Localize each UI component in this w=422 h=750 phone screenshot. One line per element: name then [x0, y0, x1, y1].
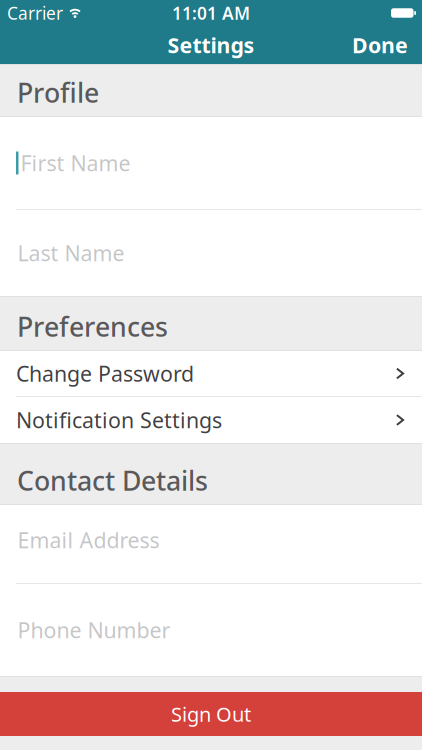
staticText: Preferences	[17, 309, 168, 344]
staticText: Last Name	[17, 239, 124, 267]
staticText: Notification Settings	[16, 406, 222, 434]
button[interactable]: First Name	[0, 117, 422, 209]
staticText: Change Password	[16, 359, 194, 388]
staticText: Settings	[167, 31, 254, 59]
button[interactable]: Last Name	[0, 210, 422, 296]
staticText: Profile	[17, 75, 99, 110]
staticText: 11:01 AM	[172, 1, 250, 24]
button[interactable]: Phone Number	[0, 584, 422, 676]
staticText: Sign Out	[171, 701, 251, 727]
staticText: Done	[352, 31, 408, 59]
button[interactable]: Sign Out	[0, 692, 422, 736]
staticText: First Name	[20, 149, 130, 177]
button[interactable]: Notification Settings	[0, 397, 422, 443]
button[interactable]: Email Address	[0, 505, 422, 583]
button[interactable]: Done	[352, 31, 408, 59]
staticText: Email Address	[17, 526, 159, 554]
button[interactable]: Change Password	[0, 351, 422, 396]
staticText: Contact Details	[17, 463, 208, 498]
staticText: Phone Number	[17, 616, 170, 644]
staticText: Carrier	[7, 1, 63, 24]
